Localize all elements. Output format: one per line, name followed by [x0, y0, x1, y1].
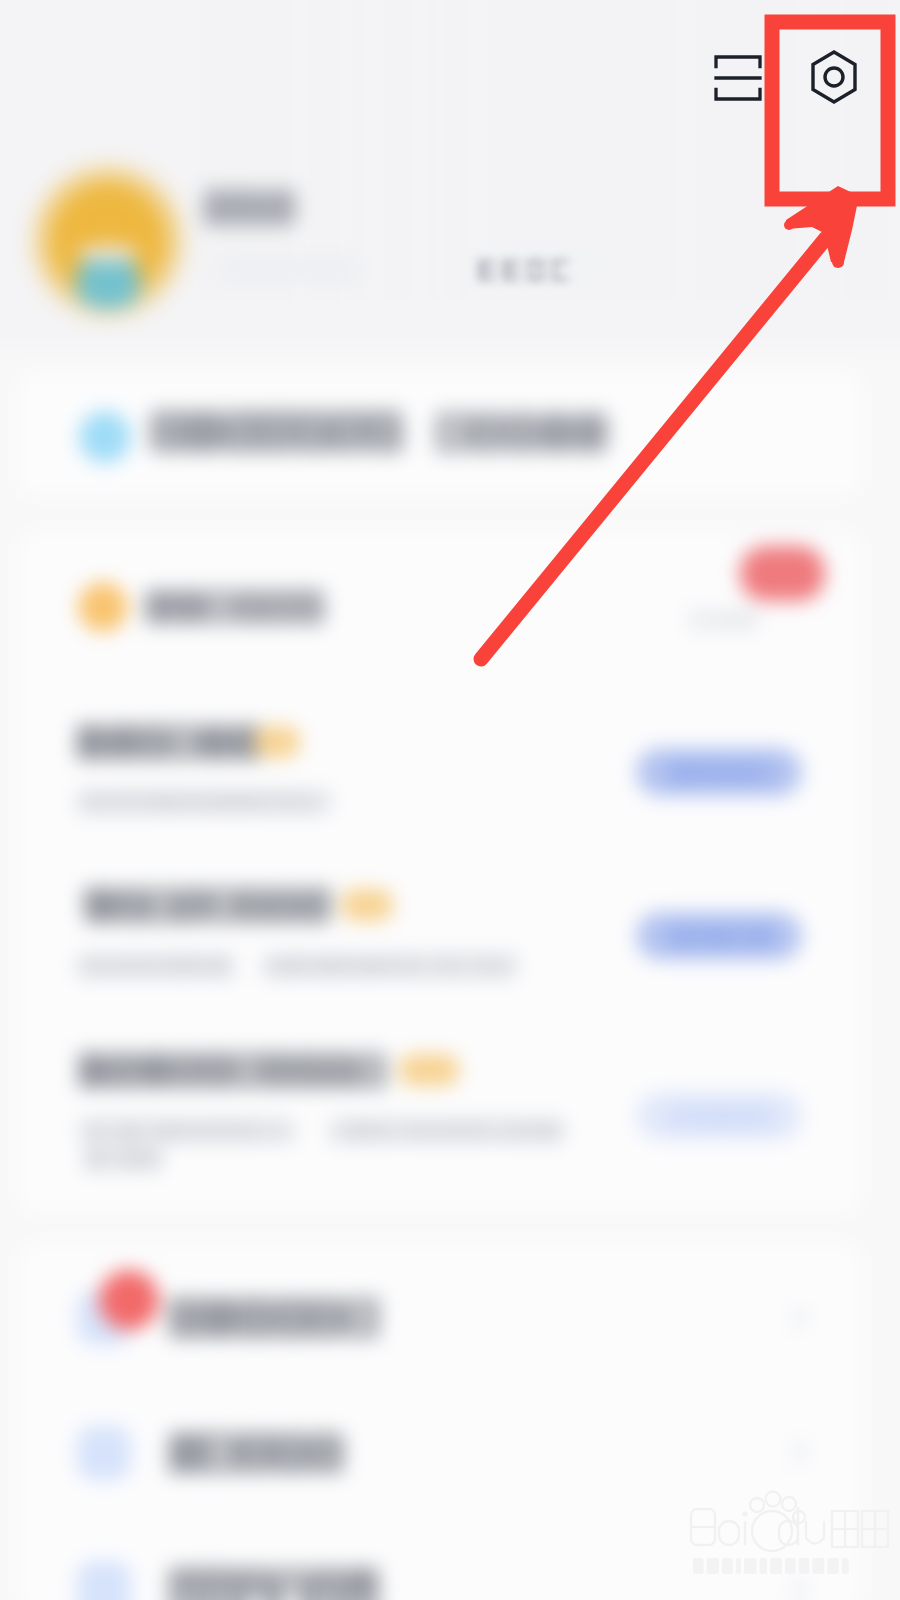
button[interactable]: Settings: [802, 46, 866, 110]
button[interactable]: Scan code: [704, 46, 770, 112]
button[interactable]: [18, 372, 862, 496]
button[interactable]: [636, 1084, 802, 1132]
button[interactable]: [466, 247, 606, 285]
other: Highlight pointing at the settings icon: [0, 0, 900, 1600]
button[interactable]: [18, 1522, 862, 1600]
button[interactable]: [636, 906, 802, 954]
button[interactable]: [18, 1256, 862, 1384]
button[interactable]: [18, 540, 862, 680]
button[interactable]: [18, 1392, 862, 1520]
button[interactable]: [636, 744, 802, 792]
button[interactable]: Profile: [32, 160, 412, 320]
